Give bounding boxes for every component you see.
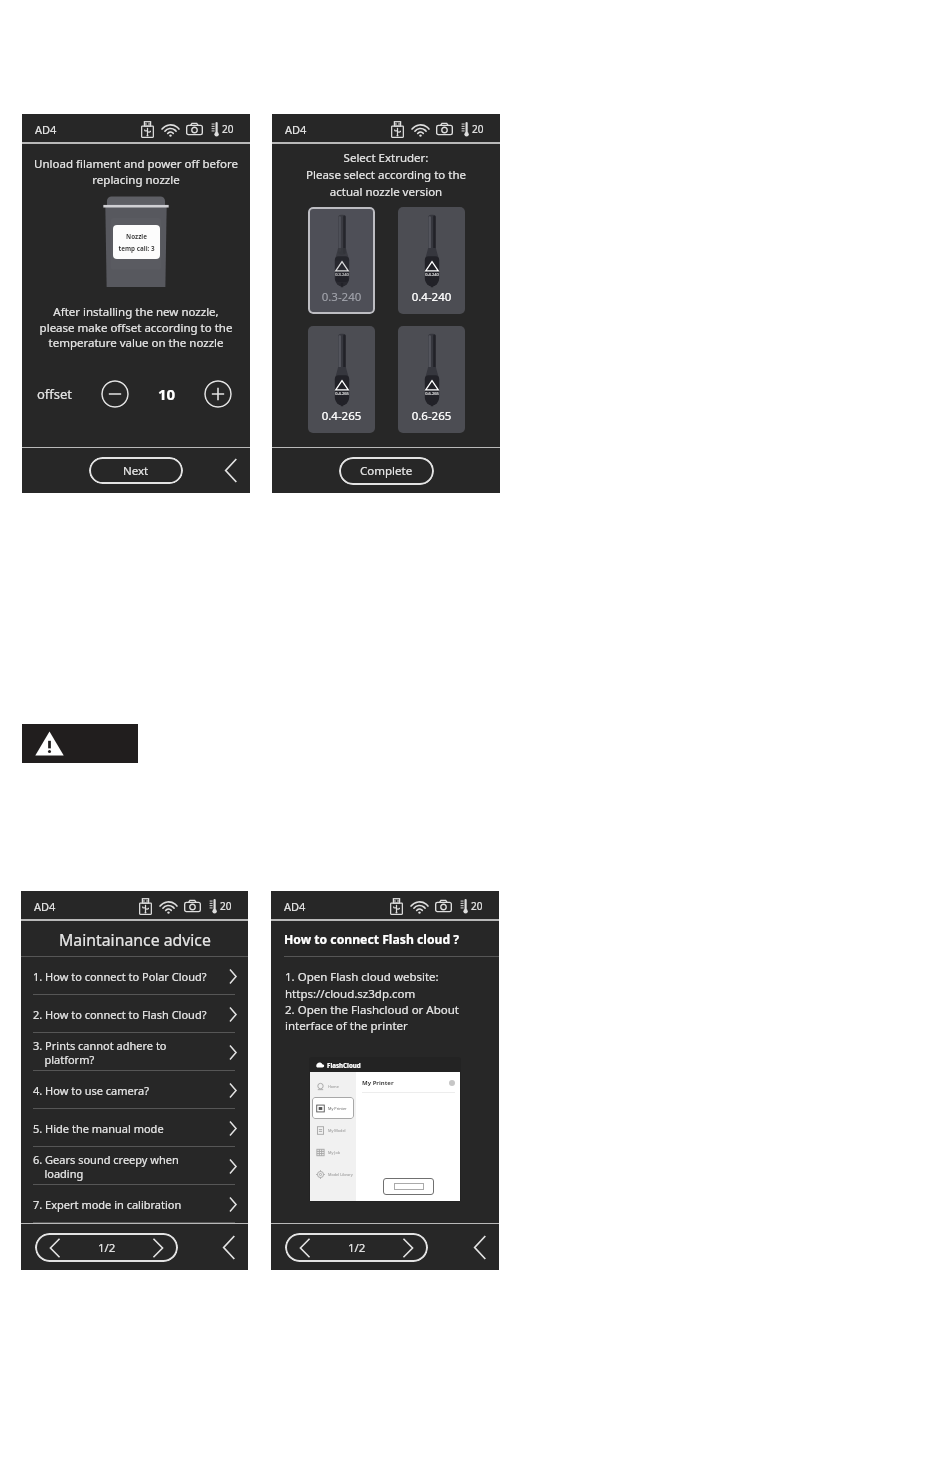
button[interactable]: 0.4-265 [308, 326, 375, 433]
button[interactable]: 7. Expert mode in calibration [21, 1185, 248, 1223]
staticText: 0.6-265 [420, 391, 444, 396]
staticText: 20 [220, 899, 232, 913]
button[interactable]: Back [222, 1235, 236, 1260]
staticText: 5. Hide the manual mode [33, 1121, 229, 1136]
button[interactable]: 3. Prints cannot adhere to platform? [21, 1033, 248, 1071]
staticText: 0.4-240 [398, 289, 465, 305]
staticText: After installing the new nozzle, please … [22, 304, 250, 350]
button[interactable]: Increase offset [204, 380, 232, 408]
staticText: My Printer [362, 1079, 394, 1087]
button[interactable]: 0.3-240 [308, 207, 375, 314]
staticText: AD4 [285, 122, 307, 137]
staticText: offset [37, 385, 73, 403]
button[interactable]: 4. How to use camera? [21, 1071, 248, 1109]
staticText: 1/2 [98, 1240, 116, 1256]
button[interactable]: Previous page [285, 1233, 325, 1262]
staticText: Select Extruder: Please select according… [272, 150, 500, 200]
button[interactable]: Decrease offset [101, 380, 129, 408]
staticText: FlashCloud [327, 1061, 361, 1069]
button[interactable]: 1. How to connect to Polar Cloud? [21, 957, 248, 995]
button[interactable]: 2. How to connect to Flash Cloud? [21, 995, 248, 1033]
staticText: My Job [328, 1150, 341, 1155]
staticText: 1. How to connect to Polar Cloud? [33, 969, 229, 984]
staticText: AD4 [34, 899, 56, 914]
staticText: Next [123, 463, 149, 479]
button[interactable]: Complete [339, 457, 434, 485]
staticText: 20 [222, 122, 234, 136]
staticText: 2. How to connect to Flash Cloud? [33, 1007, 229, 1022]
button[interactable]: Next [89, 457, 183, 484]
staticText: 0.3-240 [330, 272, 354, 277]
button[interactable]: Back [224, 458, 238, 483]
button[interactable]: Next page [388, 1233, 428, 1262]
staticText: 0.4-240 [420, 272, 444, 277]
staticText: 20 [471, 899, 483, 913]
staticText: AD4 [284, 899, 306, 914]
staticText: 1/2 [348, 1240, 366, 1256]
staticText: How to connect Flash cloud ? [284, 931, 460, 948]
button[interactable]: 6. Gears sound creepy when loading [21, 1147, 248, 1185]
staticText: 4. How to use camera? [33, 1083, 229, 1098]
staticText: 7. Expert mode in calibration [33, 1197, 229, 1212]
staticText: Model Library [328, 1172, 353, 1177]
button[interactable]: 0.6-265 [398, 326, 465, 433]
staticText: Nozzle temp cali: 3 [113, 232, 160, 253]
staticText: Maintainance advice [59, 929, 211, 951]
staticText: 3. Prints cannot adhere to platform? [33, 1038, 229, 1067]
staticText: 0.4-265 [308, 408, 375, 424]
staticText: 1. Open Flash cloud website: https://clo… [285, 969, 499, 1033]
button[interactable]: Back [473, 1235, 487, 1260]
button[interactable]: Next page [138, 1233, 178, 1262]
staticText: 10 [158, 384, 176, 404]
staticText: 0.3-240 [308, 289, 375, 305]
staticText: AD4 [35, 122, 57, 137]
button[interactable]: Previous page [35, 1233, 75, 1262]
staticText: Home [328, 1084, 339, 1089]
staticText: Unload filament and power off before rep… [22, 156, 250, 187]
staticText: Complete [360, 463, 413, 479]
staticText: 0.6-265 [398, 408, 465, 424]
staticText: 20 [472, 122, 484, 136]
button[interactable]: 5. Hide the manual mode [21, 1109, 248, 1147]
staticText: My Model [328, 1128, 346, 1133]
staticText: 6. Gears sound creepy when loading [33, 1152, 229, 1181]
staticText: My Printer [328, 1106, 347, 1111]
staticText: 0.4-265 [330, 391, 354, 396]
button[interactable]: 0.4-240 [398, 207, 465, 314]
